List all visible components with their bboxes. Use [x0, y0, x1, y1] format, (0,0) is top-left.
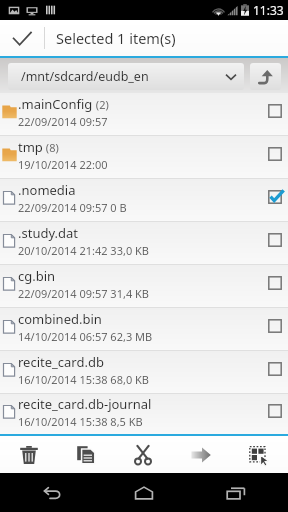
button[interactable]: Select file: [265, 308, 285, 350]
button[interactable]: Recent apps: [196, 473, 276, 512]
staticText: .study.dat: [18, 224, 79, 242]
button[interactable]: Move: [172, 436, 230, 473]
button[interactable]: tmp: [0, 136, 288, 179]
staticText: 16/10/2014 15:38 8,5 KB: [18, 414, 143, 429]
staticText: recite_card.db: [18, 353, 104, 371]
button[interactable]: .study.dat: [0, 222, 288, 265]
button[interactable]: Home: [104, 473, 184, 512]
staticText: /mnt/sdcard/eudb_en: [21, 68, 149, 85]
staticText: tmp: [18, 138, 43, 156]
button[interactable]: Back: [12, 473, 92, 512]
button[interactable]: Select file: [265, 351, 285, 393]
staticText: 19/10/2014 22:00: [18, 157, 108, 172]
staticText: 22/09/2014 09:57: [18, 114, 108, 129]
staticText: combined.bin: [18, 310, 102, 328]
staticText: (2): [93, 97, 109, 112]
button[interactable]: combined.bin: [0, 308, 288, 351]
staticText: .mainConfig: [18, 95, 93, 113]
staticText: .nomedia: [18, 181, 76, 199]
button[interactable]: recite_card.db: [0, 351, 288, 394]
staticText: recite_card.db-journal: [18, 395, 152, 413]
button[interactable]: Confirm selection: [0, 20, 44, 56]
staticText: 14/10/2014 06:57 62,3 MB: [18, 329, 153, 344]
button[interactable]: cg.bin: [0, 265, 288, 308]
button[interactable]: /mnt/sdcard/eudb_en: [8, 63, 244, 90]
staticText: 22/09/2014 09:57 31,4 KB: [18, 286, 149, 301]
button[interactable]: Select file: [265, 93, 285, 135]
button[interactable]: Select file: [265, 222, 285, 264]
button[interactable]: Go up one level: [250, 63, 281, 90]
button[interactable]: Select file: [265, 136, 285, 178]
staticText: cg.bin: [18, 267, 56, 285]
button[interactable]: Cut: [114, 436, 172, 473]
staticText: 16/10/2014 15:38 68,0 KB: [18, 372, 149, 387]
button[interactable]: recite_card.db-journal: [0, 394, 288, 434]
staticText: 22/09/2014 09:57 0 B: [18, 200, 127, 215]
staticText: 20/10/2014 21:42 33,0 KB: [18, 243, 149, 258]
staticText: 11:33: [253, 2, 284, 18]
button[interactable]: .mainConfig: [0, 93, 288, 136]
staticText: Selected 1 item(s): [56, 28, 176, 48]
button[interactable]: Select file: [265, 265, 285, 307]
button[interactable]: Select file: [265, 179, 285, 221]
button[interactable]: .nomedia: [0, 179, 288, 222]
button[interactable]: Delete: [0, 436, 57, 473]
button[interactable]: Select all: [230, 436, 288, 473]
button[interactable]: Copy: [57, 436, 114, 473]
staticText: (8): [43, 140, 59, 155]
button[interactable]: Select file: [265, 394, 285, 434]
